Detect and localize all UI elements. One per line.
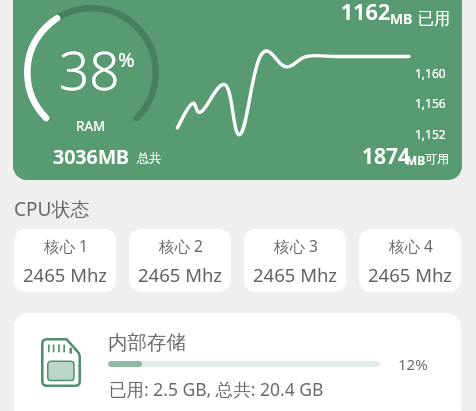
staticText: MB xyxy=(406,152,426,168)
button[interactable]: 内部存储 xyxy=(14,313,461,411)
staticText: 可用 xyxy=(425,151,449,166)
button[interactable]: 核心 4 xyxy=(359,229,461,292)
staticText: 核心 2 xyxy=(159,235,203,256)
staticText: 38 xyxy=(59,33,120,105)
staticText: % xyxy=(118,46,135,73)
staticText: RAM xyxy=(76,117,106,135)
staticText: CPU状态 xyxy=(14,196,90,222)
staticText: 1874 xyxy=(362,142,411,171)
button[interactable]: 核心 2 xyxy=(129,229,231,292)
staticText: 2465 Mhz xyxy=(138,262,223,287)
staticText: 1,160 xyxy=(415,65,446,81)
staticText: 核心 4 xyxy=(389,235,433,256)
staticText: 核心 1 xyxy=(44,235,88,256)
staticText: 总共 xyxy=(137,150,161,165)
staticText: 内部存储 xyxy=(108,330,186,355)
button[interactable]: 核心 1 xyxy=(14,229,116,292)
staticText: 1162 xyxy=(341,0,391,26)
staticText: MB xyxy=(98,143,129,170)
staticText: 2465 Mhz xyxy=(23,262,108,287)
staticText: 3036 xyxy=(53,143,98,170)
staticText: 12% xyxy=(398,354,428,374)
staticText: 已用: 2.5 GB, 总共: 20.4 GB xyxy=(109,377,324,401)
staticText: 核心 3 xyxy=(274,235,318,256)
staticText: 2465 Mhz xyxy=(253,262,338,287)
staticText: 已用 xyxy=(418,9,450,29)
button[interactable]: 38 xyxy=(13,0,462,180)
staticText: 1,156 xyxy=(415,95,446,111)
button[interactable]: 核心 3 xyxy=(244,229,346,292)
staticText: 1,152 xyxy=(415,126,446,142)
staticText: 2465 Mhz xyxy=(368,262,453,287)
staticText: MB xyxy=(390,9,413,28)
